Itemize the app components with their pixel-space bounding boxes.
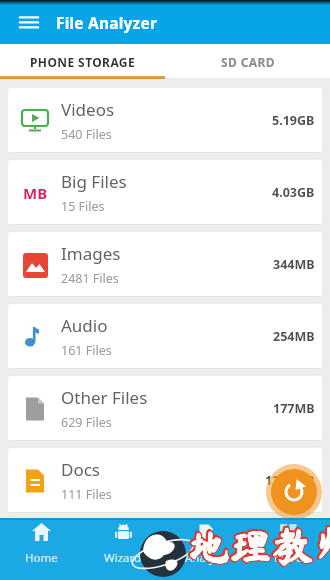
staticText: 地理教师 — [187, 525, 330, 567]
staticText: Big Files — [61, 170, 127, 193]
staticText: 177MB — [273, 400, 315, 417]
staticText: Videos — [61, 98, 115, 121]
button[interactable] — [271, 469, 317, 515]
staticText: Audio — [61, 314, 108, 337]
button[interactable]: More — [247, 518, 330, 580]
staticText: Home — [25, 550, 58, 566]
staticText: More — [274, 550, 303, 566]
staticText: 地理教师 — [187, 524, 330, 566]
staticText: 254MB — [273, 328, 315, 345]
staticText: 2481 Files — [61, 270, 119, 287]
staticText: SD CARD — [221, 54, 275, 70]
button[interactable]: Images — [8, 232, 322, 297]
button[interactable]: Home — [0, 518, 82, 580]
staticText: 地理教师 — [188, 524, 330, 566]
button[interactable]: Analyze — [164, 518, 247, 580]
staticText: 540 Files — [61, 126, 112, 143]
staticText: 12.34GB — [265, 472, 315, 489]
staticText: Other Files — [61, 386, 148, 409]
staticText: Analyze — [185, 550, 227, 566]
staticText: 344MB — [273, 256, 315, 273]
staticText: 161 Files — [61, 342, 112, 359]
button[interactable]: SD CARD — [165, 44, 330, 79]
staticText: 111 Files — [61, 486, 112, 503]
button[interactable]: Wizard — [82, 518, 164, 580]
staticText: 5.19GB — [272, 112, 315, 129]
staticText: MB — [23, 183, 48, 203]
staticText: 629 Files — [61, 414, 112, 431]
staticText: PHONE STORAGE — [30, 54, 136, 70]
staticText: 地理教师 — [188, 525, 330, 567]
button[interactable]: PHONE STORAGE — [0, 44, 165, 79]
button[interactable] — [14, 7, 44, 37]
staticText: 15 Files — [61, 198, 105, 215]
staticText: 4.03GB — [272, 184, 315, 201]
button[interactable]: Audio — [8, 304, 322, 369]
staticText: File Analyzer — [56, 12, 158, 33]
staticText: Wizard — [104, 550, 142, 566]
button[interactable]: MB — [8, 160, 322, 225]
staticText: 地理教师 — [187, 524, 330, 566]
button[interactable]: Other Files — [8, 376, 322, 441]
staticText: Images — [61, 242, 121, 265]
button[interactable]: Videos — [8, 88, 322, 153]
staticText: Docs — [61, 458, 100, 481]
button[interactable]: Docs — [8, 448, 322, 513]
